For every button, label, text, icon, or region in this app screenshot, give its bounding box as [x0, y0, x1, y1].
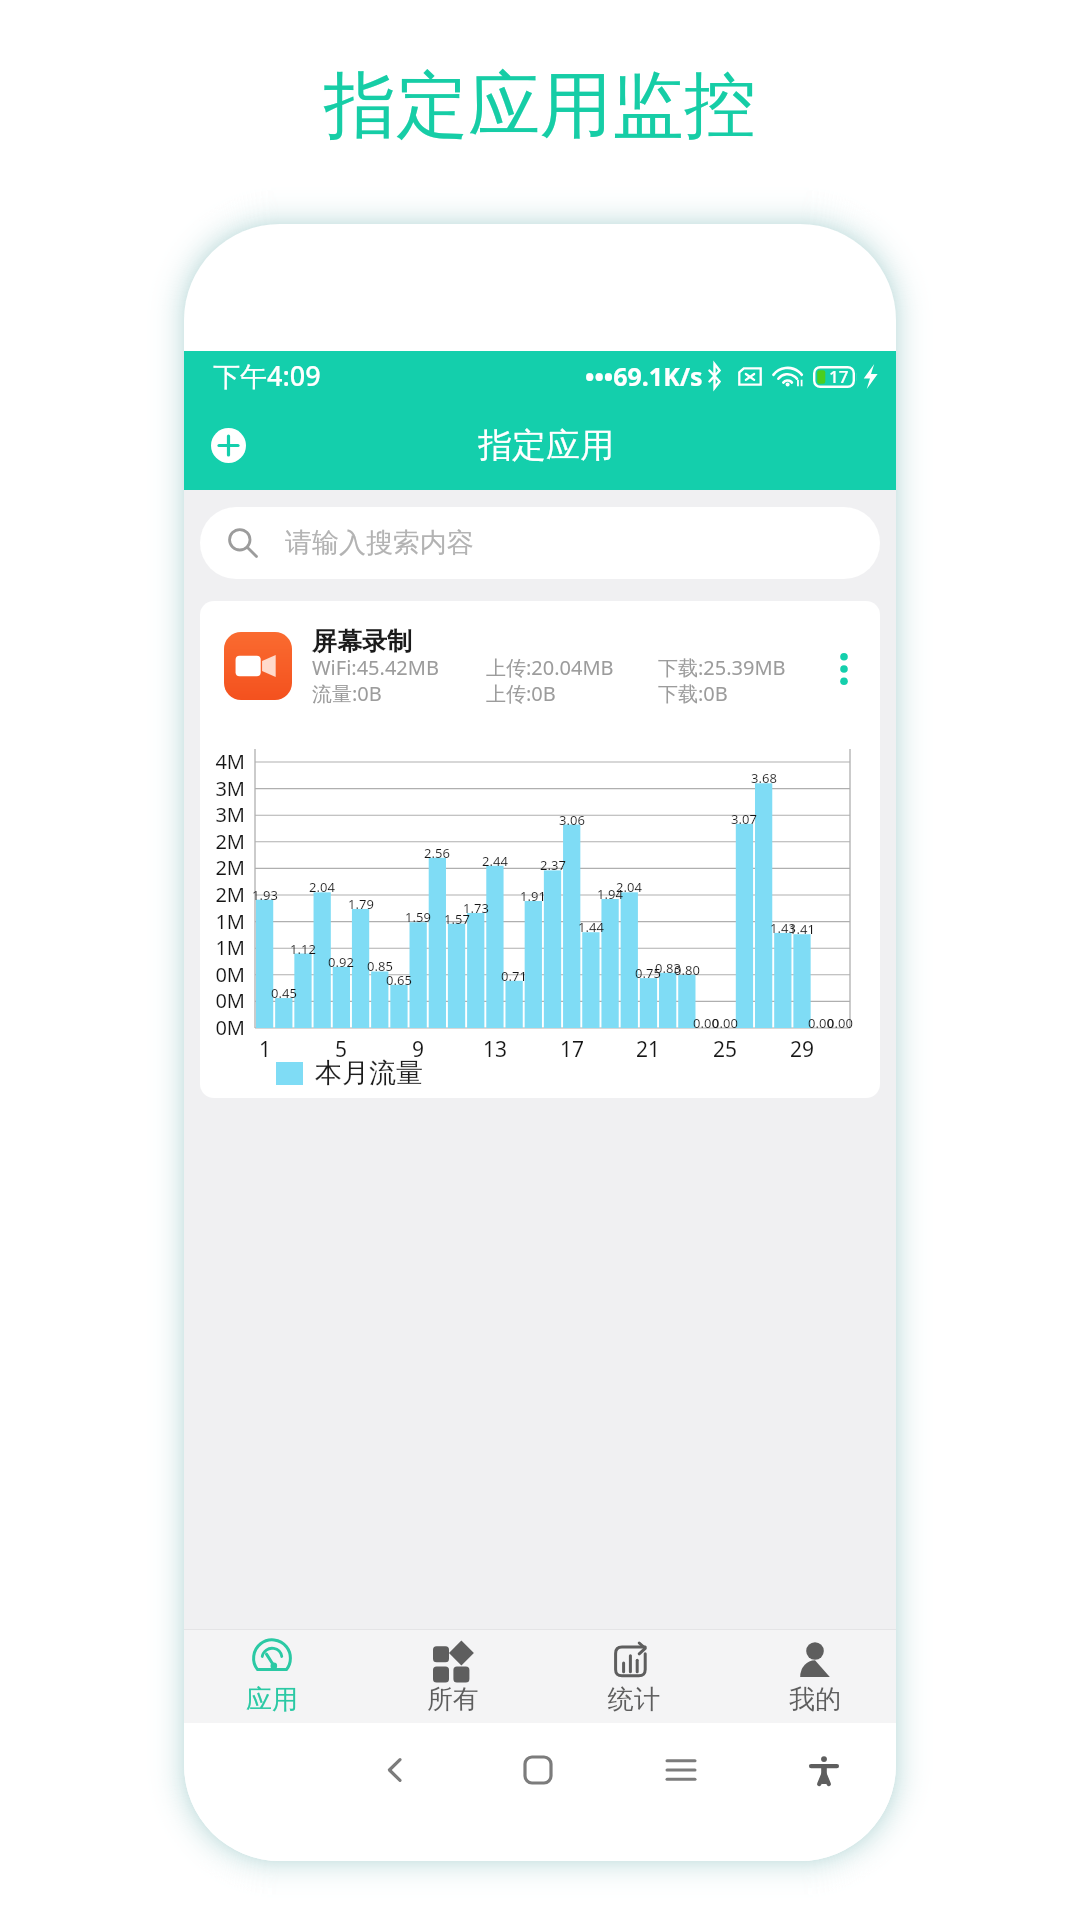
staticText: 上传:20.04MB	[486, 654, 614, 681]
staticText: 上传:0B	[486, 680, 556, 707]
button[interactable]: 所有	[368, 1630, 538, 1723]
staticText: 17	[829, 365, 849, 388]
staticText: 9	[388, 1035, 448, 1064]
staticText: 4M	[200, 748, 245, 775]
staticText: 0.00	[810, 1014, 870, 1032]
staticText: •••69.1K/s	[585, 359, 703, 393]
button[interactable]: 应用	[187, 1630, 357, 1723]
staticText: 13	[465, 1035, 525, 1064]
staticText: 1.57	[427, 910, 487, 928]
button[interactable]: 返回	[360, 1735, 430, 1805]
button[interactable]: 请输入搜索内容	[200, 507, 880, 579]
staticText: 下午4:09	[213, 357, 321, 394]
staticText: 5	[311, 1035, 371, 1064]
staticText: 1.43	[753, 919, 813, 937]
staticText: 本月流量	[315, 1056, 423, 1090]
staticText: 0M	[200, 961, 245, 988]
staticText: 1.91	[503, 887, 563, 905]
staticText: 0.71	[484, 967, 544, 985]
staticText: 0.00	[676, 1014, 736, 1032]
staticText: 屏幕录制	[312, 626, 412, 657]
staticText: 下载:0B	[658, 680, 728, 707]
staticText: 所有	[427, 1683, 479, 1716]
staticText: 3.06	[542, 811, 602, 829]
staticText: 2.37	[523, 856, 583, 874]
staticText: 1.93	[235, 886, 295, 904]
staticText: 2.04	[599, 878, 659, 896]
staticText: 0.75	[618, 964, 678, 982]
staticText: 2M	[200, 828, 245, 855]
staticText: 29	[772, 1035, 832, 1064]
staticText: 0.83	[638, 959, 698, 977]
staticText: 3M	[200, 775, 245, 802]
staticText: 0.65	[369, 971, 429, 989]
staticText: 3.68	[734, 769, 794, 787]
staticText: 3.07	[714, 810, 774, 828]
staticText: 2M	[200, 881, 245, 908]
staticText: 1.44	[561, 918, 621, 936]
staticText: 0M	[200, 987, 245, 1014]
button[interactable]: 我的	[730, 1630, 896, 1723]
staticText: 0.85	[350, 957, 410, 975]
button[interactable]: 统计	[549, 1630, 719, 1723]
button[interactable]: 屏幕录制	[200, 601, 880, 1098]
staticText: 应用	[246, 1683, 298, 1716]
staticText: 21	[618, 1035, 678, 1064]
staticText: 1	[235, 1035, 295, 1064]
staticText: 2.44	[465, 852, 525, 870]
staticText: 2.04	[292, 878, 352, 896]
staticText: 0.92	[311, 953, 371, 971]
staticText: 1.79	[331, 895, 391, 913]
staticText: 我的	[789, 1683, 841, 1716]
button[interactable]: 主页	[503, 1735, 573, 1805]
staticText: 1.94	[580, 885, 640, 903]
staticText: 2M	[200, 854, 245, 881]
staticText: 1M	[200, 908, 245, 935]
staticText: 指定应用	[478, 424, 614, 467]
staticText: 1.12	[273, 940, 333, 958]
staticText: 1.41	[772, 920, 832, 938]
staticText: 3M	[200, 801, 245, 828]
staticText: 下载:25.39MB	[658, 654, 786, 681]
staticText: 1.73	[446, 899, 506, 917]
staticText: WiFi:45.42MB	[312, 654, 439, 681]
staticText: 指定应用监控	[324, 61, 756, 152]
staticText: 0.80	[657, 961, 717, 979]
staticText: 17	[542, 1035, 602, 1064]
staticText: 25	[695, 1035, 755, 1064]
button[interactable]: 无障碍	[789, 1735, 859, 1805]
staticText: 统计	[608, 1683, 660, 1716]
staticText: 请输入搜索内容	[285, 526, 474, 560]
staticText: 0.00	[695, 1014, 755, 1032]
staticText: 流量:0B	[312, 680, 382, 707]
staticText: 0.00	[791, 1014, 851, 1032]
staticText: 1M	[200, 934, 245, 961]
button[interactable]: 更多	[821, 646, 867, 692]
staticText: 0M	[200, 1014, 245, 1041]
button[interactable]: 最近任务	[646, 1735, 716, 1805]
staticText: 2.56	[407, 844, 467, 862]
staticText: 1.59	[388, 908, 448, 926]
staticText: 0.45	[254, 984, 314, 1002]
button[interactable]: 添加应用	[211, 428, 246, 463]
